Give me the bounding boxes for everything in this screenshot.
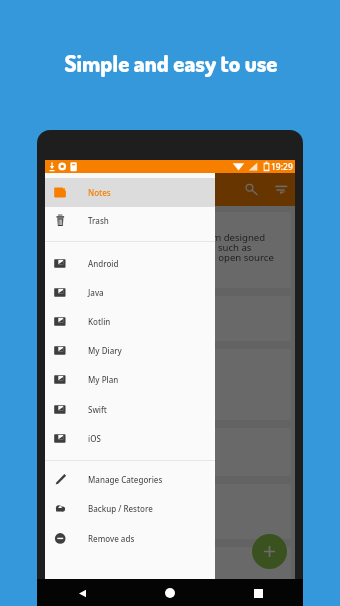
staticText: Java	[88, 287, 104, 298]
button[interactable]	[49, 547, 291, 587]
button[interactable]: Notes	[45, 178, 215, 207]
button[interactable]: Backup / Restore	[45, 494, 215, 523]
button[interactable]: Trash	[45, 206, 215, 234]
button[interactable]: Recents	[245, 580, 271, 606]
staticText: Simple and easy to use	[1, 49, 340, 77]
staticText: Backup / Restore	[88, 503, 153, 514]
button[interactable]: Android	[45, 249, 215, 278]
button[interactable]: Back	[69, 580, 95, 606]
staticText: Trash	[88, 215, 109, 226]
staticText: My Plan	[88, 374, 119, 385]
button[interactable]: Java	[45, 278, 215, 307]
staticText: Manage Categories	[88, 474, 163, 485]
staticText: 19:29	[271, 161, 293, 173]
staticText: Remove ads	[88, 533, 135, 544]
button[interactable]: Manage Categories	[45, 465, 215, 494]
staticText: Swift	[88, 404, 107, 415]
button[interactable]: Remove ads	[45, 524, 215, 553]
button[interactable]: iOS	[45, 424, 215, 453]
button[interactable]	[49, 484, 291, 539]
staticText: Notes	[88, 187, 111, 198]
button[interactable]: Sort	[267, 177, 292, 202]
button[interactable]: Add note	[252, 534, 287, 569]
button[interactable]: Kotlin	[45, 307, 215, 336]
button[interactable]: Swift	[45, 395, 215, 424]
staticText: Notepad is a simple app and custom desig…	[57, 231, 274, 264]
staticText: My Diary	[88, 345, 122, 356]
button[interactable]	[49, 349, 291, 420]
button[interactable]	[49, 428, 291, 476]
button[interactable]: Search	[237, 177, 262, 202]
staticText: iOS	[88, 433, 101, 444]
button[interactable]: Notepad is a simple app and custom desig…	[49, 212, 291, 288]
staticText: Android	[88, 258, 119, 269]
button[interactable]: My Plan	[45, 365, 215, 394]
button[interactable]: Home	[157, 580, 183, 606]
button[interactable]	[49, 296, 291, 341]
button[interactable]: My Diary	[45, 336, 215, 365]
staticText: Kotlin	[88, 316, 111, 327]
